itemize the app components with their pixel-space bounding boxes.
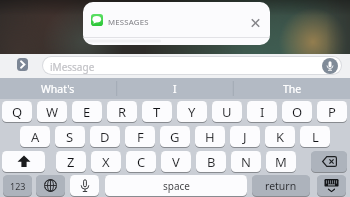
button[interactable]: I (247, 101, 277, 122)
button[interactable]: U (212, 101, 242, 122)
button[interactable]: F (125, 126, 155, 147)
staticText: A (31, 128, 40, 146)
button[interactable] (317, 175, 346, 196)
staticText: Z (67, 153, 75, 171)
button[interactable]: iMessage (42, 56, 342, 75)
staticText: P (328, 103, 336, 121)
button[interactable]: G (160, 126, 190, 147)
staticText: iMessage (50, 60, 95, 74)
staticText: space (163, 179, 190, 193)
staticText: K (276, 128, 285, 146)
button[interactable]: Y (177, 101, 207, 122)
button[interactable]: X (91, 151, 121, 172)
staticText: D (100, 128, 110, 146)
button[interactable]: space (105, 175, 247, 196)
staticText: C (137, 153, 146, 171)
staticText: V (172, 153, 180, 171)
button[interactable]: Z (56, 151, 86, 172)
staticText: I (173, 82, 177, 96)
staticText: O (292, 103, 303, 121)
button[interactable]: W (37, 101, 67, 122)
button[interactable]: R (107, 101, 137, 122)
staticText: I (260, 103, 265, 121)
button[interactable]: C (126, 151, 156, 172)
button[interactable]: A (20, 126, 50, 147)
staticText: X (102, 153, 110, 171)
button[interactable]: V (161, 151, 191, 172)
staticText: B (207, 153, 216, 171)
staticText: return (265, 179, 297, 193)
staticText: Y (188, 103, 196, 121)
button[interactable] (322, 58, 338, 74)
staticText: 123 (10, 180, 26, 192)
staticText: T (153, 103, 161, 121)
staticText: H (205, 128, 215, 146)
button[interactable]: The (234, 78, 350, 99)
button[interactable]: J (230, 126, 260, 147)
button[interactable]: I (117, 78, 233, 99)
staticText: N (241, 153, 251, 171)
button[interactable]: N (231, 151, 261, 172)
button[interactable]: B (196, 151, 226, 172)
button[interactable] (17, 58, 28, 71)
staticText: L (312, 128, 319, 146)
button[interactable] (70, 175, 99, 196)
button[interactable]: D (90, 126, 120, 147)
staticText: G (170, 128, 180, 146)
staticText: M (275, 153, 287, 171)
button[interactable]: return (252, 175, 310, 196)
button[interactable]: K (265, 126, 295, 147)
button[interactable] (2, 151, 45, 172)
button[interactable]: Q (2, 101, 32, 122)
button[interactable]: L (300, 126, 330, 147)
button[interactable]: E (72, 101, 102, 122)
staticText: What's (41, 82, 75, 96)
button[interactable]: S (55, 126, 85, 147)
staticText: MESSAGES (108, 17, 149, 28)
button[interactable] (36, 175, 65, 196)
button[interactable]: 123 (3, 175, 32, 196)
button[interactable]: P (317, 101, 347, 122)
staticText: S (66, 128, 74, 146)
staticText: E (83, 103, 91, 121)
staticText: J (243, 128, 247, 146)
button[interactable]: M (266, 151, 296, 172)
button[interactable]: T (142, 101, 172, 122)
button[interactable]: O (282, 101, 312, 122)
button[interactable]: MESSAGES (83, 2, 270, 45)
staticText: R (118, 103, 127, 121)
staticText: U (222, 103, 232, 121)
button[interactable]: H (195, 126, 225, 147)
staticText: W (46, 103, 59, 121)
button[interactable]: What's (0, 78, 116, 99)
staticText: Q (12, 103, 23, 121)
staticText: F (137, 128, 144, 146)
staticText: The (283, 82, 302, 96)
button[interactable] (311, 151, 347, 172)
